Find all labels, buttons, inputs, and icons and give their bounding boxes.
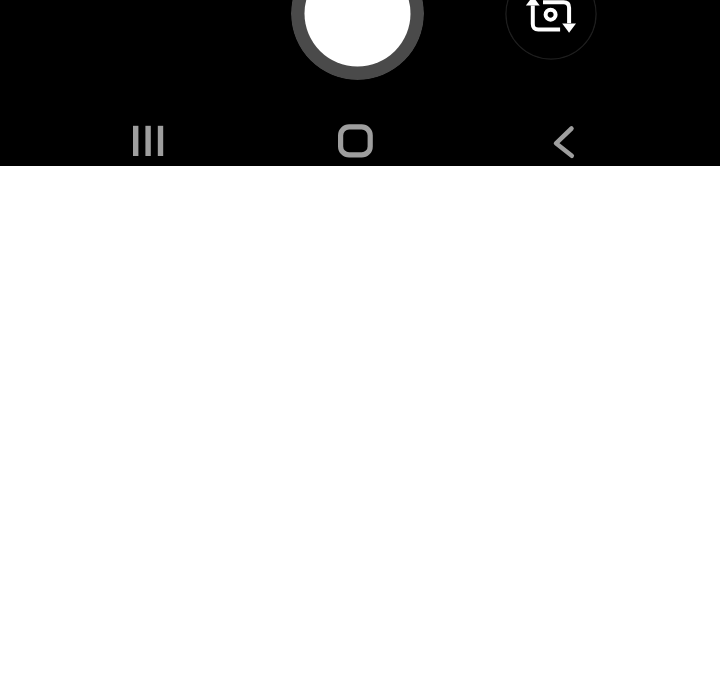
button[interactable]: Switch camera <box>505 0 597 60</box>
button[interactable]: Recent apps <box>0 112 240 166</box>
button[interactable]: Home <box>240 112 480 166</box>
button[interactable]: Capture photo <box>291 0 424 80</box>
button[interactable]: Back <box>480 112 720 166</box>
